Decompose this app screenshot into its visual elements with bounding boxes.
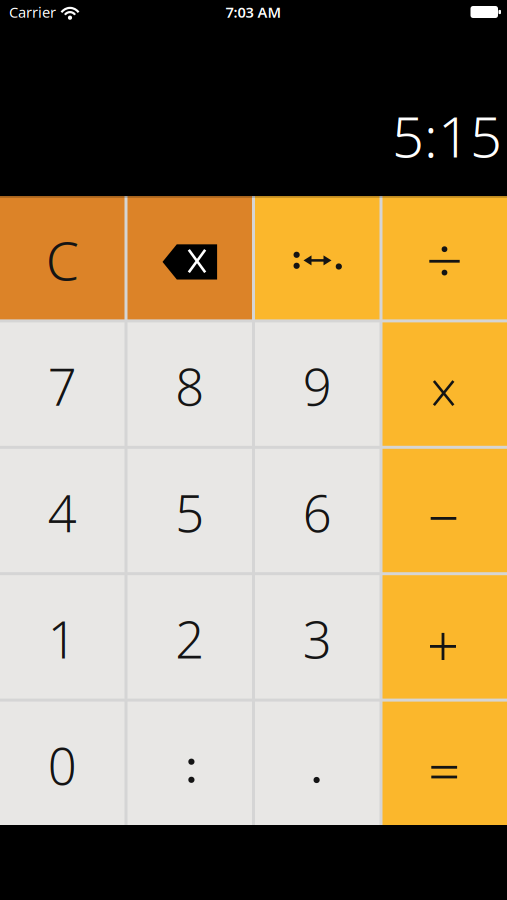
staticText: C <box>46 224 79 295</box>
staticText: 7 <box>48 352 77 420</box>
staticText: 3 <box>303 605 332 673</box>
button[interactable]: C <box>0 196 124 319</box>
staticText: 6 <box>303 479 332 546</box>
button[interactable]: 0 <box>0 702 124 825</box>
staticText: 9 <box>303 352 332 420</box>
button[interactable]: Equals <box>382 702 507 825</box>
staticText: 0 <box>48 732 77 799</box>
button[interactable]: Switch between time and decimal <box>255 196 379 319</box>
button[interactable]: Colon <box>127 702 252 825</box>
button[interactable]: 3 <box>255 575 379 699</box>
button[interactable]: 2 <box>127 575 252 699</box>
button[interactable]: Delete <box>127 196 252 319</box>
button[interactable]: Minus <box>382 449 507 572</box>
staticText: 4 <box>48 479 77 546</box>
button[interactable]: Plus <box>382 575 507 699</box>
button[interactable]: Divide <box>382 196 507 319</box>
button[interactable]: 8 <box>127 322 252 446</box>
button[interactable]: 9 <box>255 322 379 446</box>
button[interactable]: 6 <box>255 449 379 572</box>
staticText: 5:15 <box>392 99 502 173</box>
button[interactable]: Multiply <box>382 322 507 446</box>
staticText: 5 <box>175 479 204 546</box>
staticText: 1 <box>48 605 77 673</box>
button[interactable]: 1 <box>0 575 124 699</box>
staticText: Carrier <box>9 2 56 22</box>
staticText: 7:03 AM <box>225 2 281 22</box>
staticText: 2 <box>175 605 204 673</box>
button[interactable]: Decimal point <box>255 702 379 825</box>
staticText: 8 <box>175 352 204 420</box>
button[interactable]: 5 <box>127 449 252 572</box>
button[interactable]: 4 <box>0 449 124 572</box>
button[interactable]: 7 <box>0 322 124 446</box>
